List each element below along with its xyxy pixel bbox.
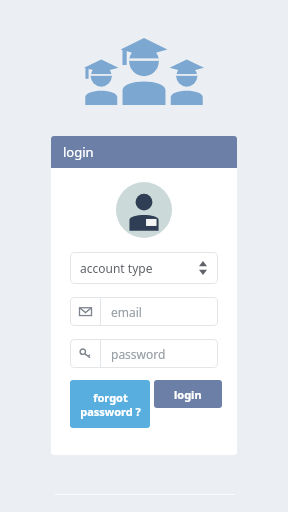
button[interactable]: login: [154, 380, 222, 408]
staticText: login: [63, 143, 94, 161]
staticText: login: [174, 387, 202, 402]
staticText: account type: [80, 260, 199, 276]
staticText: password: [111, 346, 166, 362]
button[interactable]: Password field: [70, 339, 218, 368]
staticText: forgot password ?: [80, 390, 141, 419]
button[interactable]: login: [51, 136, 237, 168]
staticText: email: [111, 304, 142, 320]
button[interactable]: account type: [70, 252, 218, 284]
button[interactable]: Email field: [70, 297, 218, 326]
button[interactable]: forgot password ?: [70, 380, 150, 428]
